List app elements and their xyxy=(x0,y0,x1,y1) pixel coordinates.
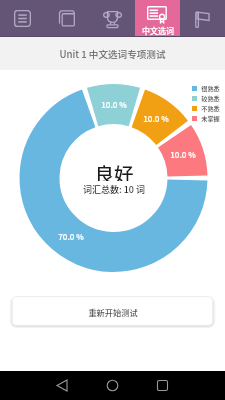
staticText: 70.0 % xyxy=(58,231,84,243)
button[interactable]: Flag xyxy=(180,0,225,37)
staticText: 10.0 % xyxy=(170,149,196,161)
staticText: 良好 xyxy=(94,159,134,181)
button[interactable]: Cards xyxy=(45,0,90,37)
staticText: 很熟悉 xyxy=(201,84,220,93)
button[interactable]: List xyxy=(0,0,45,37)
button[interactable]: 重新开始测试 xyxy=(8,293,217,330)
staticText: 重新开始测试 xyxy=(88,306,138,318)
staticText: 10.0 % xyxy=(101,99,127,111)
staticText: 未掌握 xyxy=(201,114,220,123)
staticText: 10.0 % xyxy=(143,113,169,125)
staticText: 较熟悉 xyxy=(201,94,220,103)
staticText: 词汇总数: 10 词 xyxy=(83,183,145,195)
button[interactable]: Chinese word test xyxy=(135,0,180,37)
staticText: 中文选词 xyxy=(142,25,174,37)
staticText: Unit 1 中文选词专项测试 xyxy=(59,47,166,61)
button[interactable]: Ranking xyxy=(90,0,135,37)
staticText: 不熟悉 xyxy=(201,104,220,113)
